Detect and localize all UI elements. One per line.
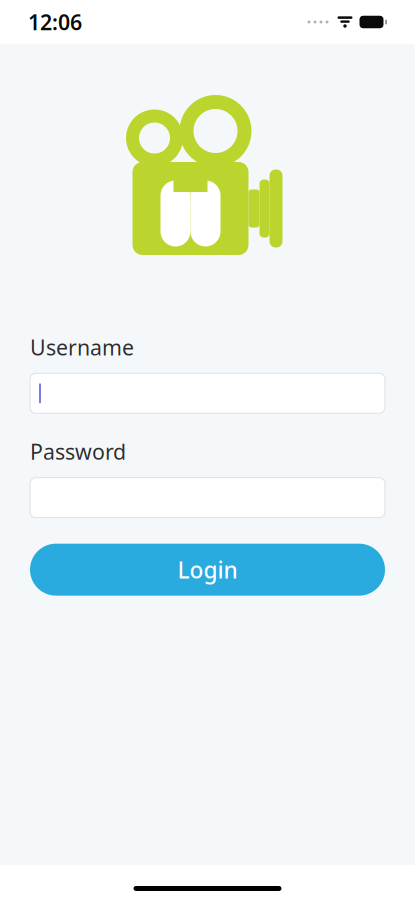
staticText: Password: [30, 437, 126, 466]
button[interactable]: [30, 478, 385, 518]
button[interactable]: Login: [30, 544, 385, 596]
staticText: Login: [177, 555, 237, 585]
button[interactable]: [30, 373, 385, 413]
staticText: Username: [30, 333, 134, 361]
staticText: 12:06: [28, 8, 82, 36]
